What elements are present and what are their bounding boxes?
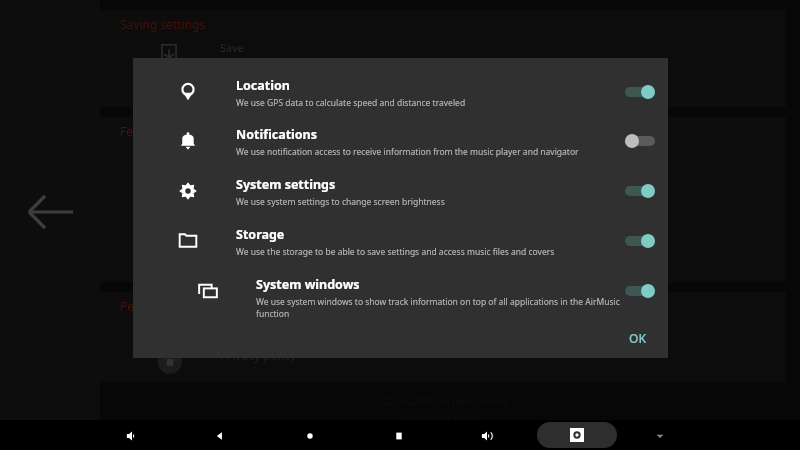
staticText: System settings bbox=[236, 176, 336, 193]
staticText: Notifications bbox=[236, 126, 318, 143]
staticText: Location bbox=[236, 77, 290, 94]
staticText: Permissions bbox=[120, 298, 189, 314]
button[interactable]: System settings on bbox=[625, 184, 655, 198]
button[interactable]: Volume down bbox=[124, 428, 140, 444]
button[interactable]: Screenshot bbox=[537, 422, 617, 448]
staticText: System windows bbox=[256, 276, 360, 293]
button[interactable]: System windows bbox=[133, 267, 668, 315]
button[interactable]: Notifications off bbox=[625, 134, 655, 148]
staticText: Privacy policy bbox=[220, 347, 296, 363]
staticText: Saving settings bbox=[120, 16, 206, 32]
button[interactable]: Back bbox=[18, 180, 82, 244]
staticText: OK bbox=[629, 330, 646, 346]
staticText: We use notification access to receive in… bbox=[236, 146, 579, 158]
staticText: No save bbox=[220, 57, 254, 69]
button[interactable]: Home bbox=[302, 428, 318, 444]
button[interactable]: Back bbox=[212, 428, 228, 444]
staticText: We use system settings to change screen … bbox=[236, 196, 445, 208]
staticText: We use GPS data to calculate speed and d… bbox=[236, 97, 466, 109]
staticText: Storage bbox=[236, 226, 285, 243]
button[interactable]: Volume up bbox=[479, 428, 495, 444]
staticText: We use the storage to be able to save se… bbox=[236, 246, 555, 258]
button[interactable]: Location on bbox=[625, 85, 655, 99]
staticText: Feedback bbox=[120, 123, 174, 139]
button[interactable]: Recents bbox=[391, 428, 407, 444]
button[interactable]: Notifications bbox=[133, 117, 668, 165]
button[interactable]: System windows on bbox=[625, 284, 655, 298]
button[interactable]: System settings bbox=[133, 167, 668, 215]
staticText: Save bbox=[220, 40, 245, 55]
button[interactable]: Storage on bbox=[625, 234, 655, 248]
button[interactable]: More bbox=[652, 428, 668, 444]
button[interactable]: Location bbox=[133, 68, 668, 116]
staticText: User ID: 896753650 bbox=[406, 413, 480, 424]
staticText: We use system windows to show track info… bbox=[256, 296, 646, 320]
button[interactable]: OK bbox=[619, 324, 656, 352]
button[interactable]: Storage bbox=[133, 217, 668, 265]
